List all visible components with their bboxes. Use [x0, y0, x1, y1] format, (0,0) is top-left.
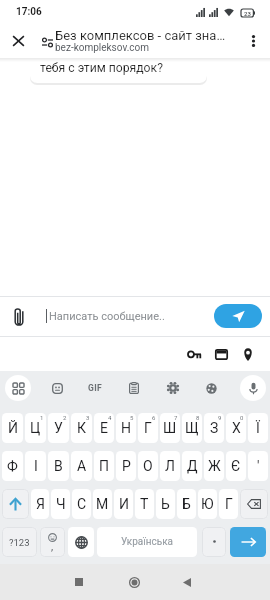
button[interactable]: '	[248, 451, 268, 481]
button[interactable]: Ж	[204, 451, 224, 481]
staticText: О	[143, 458, 153, 474]
button[interactable]: Щ	[182, 413, 202, 443]
staticText: 9	[218, 414, 222, 421]
button[interactable]: Українська	[97, 527, 197, 557]
button[interactable]: Settings	[160, 375, 186, 401]
staticText: Щ	[185, 420, 199, 436]
button[interactable]: Close	[3, 26, 33, 56]
button[interactable]: В	[48, 451, 69, 481]
button[interactable]: М	[93, 489, 112, 519]
button[interactable]: Payment methods	[209, 342, 233, 366]
staticText: К	[77, 420, 86, 436]
button[interactable]: Г	[219, 489, 238, 519]
button[interactable]: Ї	[248, 413, 268, 443]
staticText: Г	[225, 496, 233, 512]
staticText: П	[99, 458, 109, 474]
button[interactable]: Й	[2, 413, 23, 443]
button[interactable]: Т	[135, 489, 154, 519]
staticText: І	[34, 458, 38, 474]
button[interactable]: Х	[226, 413, 246, 443]
staticText: bez-kompleksov.com	[55, 42, 150, 54]
staticText: Ю	[201, 496, 214, 512]
button[interactable]: Attach file	[5, 304, 32, 331]
button[interactable]: Clipboard	[121, 375, 147, 401]
button[interactable]: Ш	[160, 413, 180, 443]
staticText: М	[96, 496, 109, 512]
button[interactable]: Написать сообщение..	[34, 302, 206, 328]
button[interactable]: Passwords	[182, 342, 206, 366]
button[interactable]: Ч	[51, 489, 70, 519]
button[interactable]: Page info	[37, 32, 57, 52]
button[interactable]: Backspace	[240, 489, 268, 519]
button[interactable]: П	[94, 451, 114, 481]
button[interactable]: Л	[160, 451, 180, 481]
staticText: 0	[240, 414, 244, 421]
staticText: А	[77, 458, 87, 474]
button[interactable]: Б	[177, 489, 196, 519]
staticText: ,	[51, 540, 54, 553]
staticText: Б	[182, 496, 191, 512]
staticText: Ж	[208, 458, 221, 474]
button[interactable]: З	[204, 413, 224, 443]
staticText: Ї	[256, 420, 260, 436]
staticText: 7	[174, 414, 178, 421]
button[interactable]: Ф	[2, 451, 23, 481]
staticText: тебя с этим порядок?	[40, 61, 163, 75]
staticText: Я	[36, 496, 45, 512]
button[interactable]: Back	[172, 567, 202, 597]
button[interactable]: ?123 key	[2, 527, 37, 557]
button[interactable]: Є	[226, 451, 246, 481]
button[interactable]: Themes	[198, 375, 224, 401]
button[interactable]: О	[138, 451, 158, 481]
staticText: 17:06	[16, 6, 42, 18]
button[interactable]: Enter	[230, 527, 266, 557]
button[interactable]: Send message	[214, 304, 262, 328]
button[interactable]: Е	[94, 413, 114, 443]
button[interactable]: Stickers	[44, 375, 70, 401]
button[interactable]: И	[114, 489, 133, 519]
button[interactable]: У	[48, 413, 69, 443]
button[interactable]: Home	[119, 567, 149, 597]
staticText: В	[54, 458, 63, 474]
staticText: Л	[165, 458, 175, 474]
staticText: Ф	[7, 458, 18, 474]
button[interactable]: Recent apps	[64, 567, 94, 597]
staticText: Без комплексов - сайт зна…	[55, 28, 226, 43]
button[interactable]	[202, 527, 226, 557]
button[interactable]: А	[71, 451, 92, 481]
button[interactable]: Ц	[25, 413, 46, 443]
staticText: Ц	[30, 420, 41, 436]
staticText: Т	[140, 496, 149, 512]
button[interactable]: Я	[31, 489, 49, 519]
button[interactable]: Р	[116, 451, 136, 481]
staticText: С	[77, 496, 87, 512]
button[interactable]: Д	[182, 451, 202, 481]
button[interactable]: More options	[238, 26, 268, 56]
staticText: 3	[86, 414, 90, 421]
button[interactable]: Г	[138, 413, 158, 443]
button[interactable]: С	[72, 489, 91, 519]
button[interactable]: Keyboard apps	[5, 375, 31, 401]
button[interactable]: Shift	[2, 489, 29, 519]
button[interactable]: Emoji	[40, 527, 65, 557]
button[interactable]: Ю	[198, 489, 217, 519]
staticText: 6	[152, 414, 156, 421]
button[interactable]: Н	[116, 413, 136, 443]
staticText: Є	[231, 458, 241, 474]
staticText: З	[210, 420, 219, 436]
button[interactable]: Voice input	[240, 375, 266, 401]
button[interactable]: К	[71, 413, 92, 443]
staticText: 1	[40, 414, 44, 421]
staticText: Д	[187, 458, 198, 474]
staticText: Ч	[56, 496, 66, 512]
button[interactable]: Change keyboard language	[68, 527, 94, 557]
staticText: Е	[100, 420, 108, 436]
staticText: 23	[244, 10, 251, 17]
staticText: Ш	[163, 420, 177, 436]
button[interactable]: Addresses	[236, 342, 260, 366]
staticText: GIF	[88, 383, 103, 393]
button[interactable]: GIF	[82, 375, 108, 401]
staticText: 8	[196, 414, 200, 421]
button[interactable]: Ь	[156, 489, 175, 519]
button[interactable]: І	[25, 451, 46, 481]
